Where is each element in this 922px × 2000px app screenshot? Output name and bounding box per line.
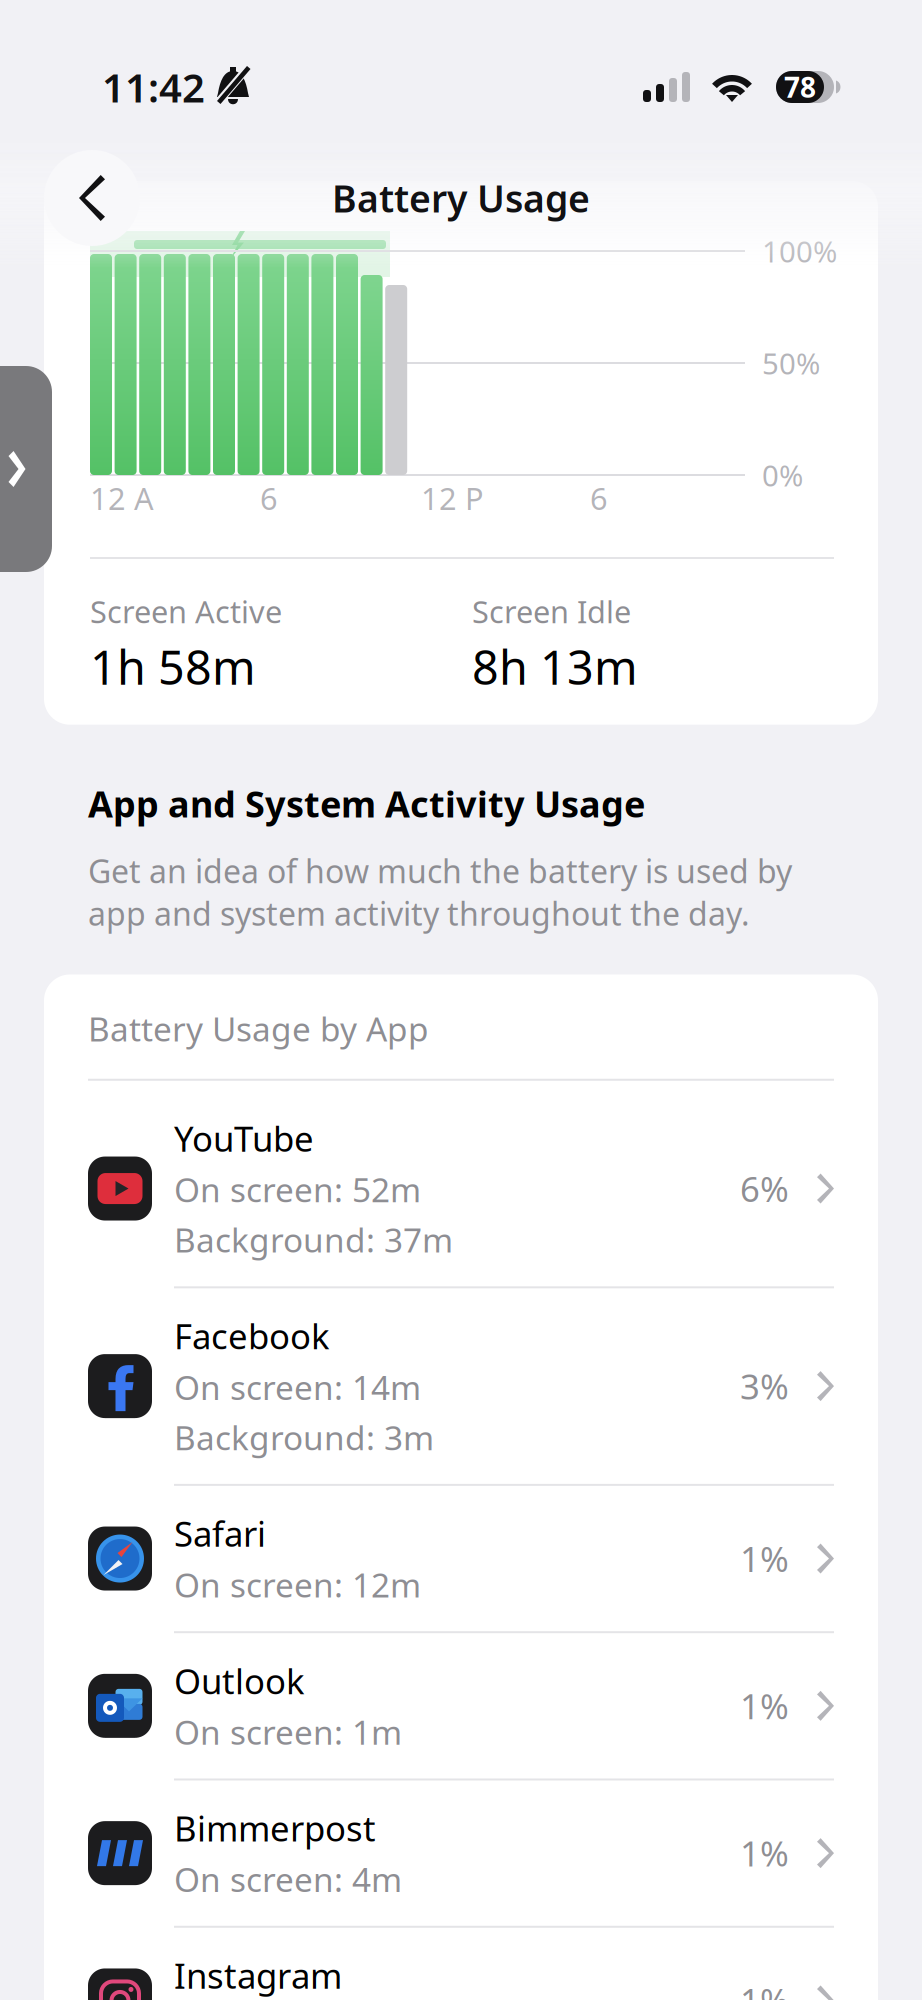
staticText: 6 — [590, 478, 608, 518]
staticText: 0% — [762, 455, 803, 494]
staticText: Battery Usage by App — [88, 1006, 429, 1051]
staticText: Bimmerpost — [174, 1805, 376, 1851]
staticText: On screen: 12m — [174, 1562, 421, 1607]
staticText: Battery Usage — [332, 173, 590, 223]
staticText: 3% — [740, 1363, 789, 1409]
staticText: 6% — [740, 1165, 789, 1211]
button[interactable]: Back — [44, 150, 140, 246]
staticText: Screen Active — [90, 591, 282, 632]
staticText: 12 P — [421, 478, 484, 518]
staticText: YouTube — [174, 1115, 314, 1161]
staticText: 8h 13m — [472, 636, 638, 698]
staticText: On screen: 14m — [174, 1365, 421, 1409]
staticText: 1% — [740, 1977, 789, 2000]
staticText: 1% — [740, 1830, 789, 1876]
button[interactable]: YouTube — [88, 1091, 834, 1288]
staticText: On screen: 52m — [174, 1167, 421, 1212]
staticText: 1% — [740, 1535, 789, 1581]
staticText: 11:42 — [102, 60, 205, 113]
staticText: On screen: 4m — [174, 1857, 402, 1901]
staticText: Facebook — [174, 1313, 330, 1359]
staticText: 12 A — [90, 478, 154, 518]
staticText: On screen: 1m — [174, 1710, 402, 1754]
staticText: Screen Idle — [472, 591, 631, 632]
staticText: 50% — [762, 343, 820, 382]
staticText: Background: 37m — [174, 1218, 453, 1262]
staticText: Outlook — [174, 1658, 305, 1704]
staticText: 100% — [762, 231, 837, 270]
button[interactable]: Facebook — [88, 1288, 834, 1486]
staticText: 78 — [784, 68, 816, 106]
staticText: 1h 58m — [90, 636, 256, 698]
staticText: Background: 3m — [174, 1415, 434, 1459]
button[interactable]: Bimmerpost — [88, 1780, 834, 1928]
button[interactable]: Open side panel — [0, 366, 52, 572]
staticText: Instagram — [174, 1952, 342, 1998]
staticText: 6 — [260, 478, 278, 518]
button[interactable]: Safari — [88, 1486, 834, 1633]
staticText: 1% — [740, 1683, 789, 1729]
staticText: App and System Activity Usage — [88, 780, 645, 827]
staticText: Safari — [174, 1510, 266, 1556]
button[interactable]: Outlook — [88, 1633, 834, 1780]
staticText: Get an idea of how much the battery is u… — [88, 849, 792, 934]
button[interactable]: Instagram — [88, 1928, 834, 2000]
